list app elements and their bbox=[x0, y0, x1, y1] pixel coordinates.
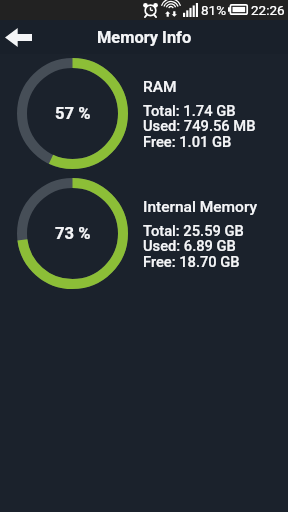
staticText: Internal Memory bbox=[143, 198, 258, 216]
button[interactable]: RAM 57 percent used bbox=[17, 58, 128, 169]
staticText: 73 % bbox=[55, 224, 91, 243]
staticText: Memory Info bbox=[97, 28, 192, 47]
button[interactable]: Back bbox=[0, 20, 36, 54]
staticText: RAM bbox=[143, 78, 177, 96]
button[interactable]: Internal Memory 73 percent used bbox=[17, 178, 128, 289]
staticText: Total: 25.59 GB Used: 6.89 GB Free: 18.7… bbox=[143, 222, 244, 271]
staticText: Total: 1.74 GB Used: 749.56 MB Free: 1.0… bbox=[143, 102, 256, 151]
staticText: 22:26 bbox=[251, 2, 285, 18]
staticText: 57 % bbox=[55, 104, 91, 123]
staticText: 81% bbox=[201, 2, 227, 18]
